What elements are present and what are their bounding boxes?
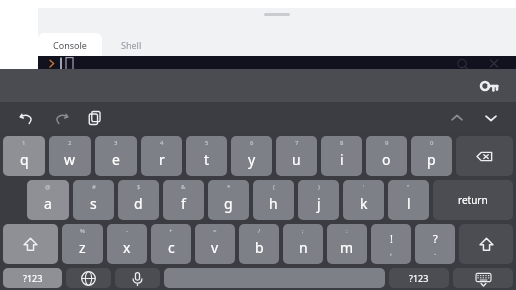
staticText: y — [248, 150, 256, 169]
button[interactable]: : — [327, 224, 367, 264]
button[interactable]: # — [73, 180, 114, 220]
staticText: ?123 — [409, 272, 429, 284]
button[interactable]: * — [208, 180, 249, 220]
button[interactable]: 4 — [141, 136, 182, 176]
button[interactable]: Backspace — [456, 136, 513, 176]
staticText: c — [168, 238, 175, 257]
staticText: x — [123, 238, 131, 257]
button[interactable]: Console — [38, 33, 102, 56]
button[interactable]: 2 — [49, 136, 91, 176]
staticText: v — [211, 238, 219, 257]
staticText: z — [79, 238, 86, 257]
staticText: 8 — [340, 139, 344, 147]
button[interactable]: Next — [474, 102, 508, 134]
staticText: m — [340, 238, 354, 257]
staticText: 0 — [430, 139, 434, 147]
button[interactable]: 6 — [231, 136, 272, 176]
staticText: + — [169, 227, 173, 235]
staticText: . — [434, 246, 437, 257]
staticText: return — [458, 193, 488, 207]
staticText: ) — [318, 183, 320, 191]
button[interactable]: - — [107, 224, 147, 264]
button[interactable]: ( — [253, 180, 294, 220]
staticText: , — [390, 246, 393, 257]
button[interactable]: 0 — [411, 136, 452, 176]
staticText: a — [44, 194, 52, 213]
staticText: p — [427, 150, 436, 169]
staticText: @ — [45, 183, 51, 191]
button[interactable]: 5 — [186, 136, 227, 176]
button[interactable]: ) — [298, 180, 339, 220]
button[interactable]: ' — [343, 180, 384, 220]
staticText: ; — [302, 227, 304, 235]
staticText: 3 — [114, 139, 118, 147]
button[interactable]: Voice input — [115, 268, 160, 288]
button[interactable]: + — [151, 224, 191, 264]
button[interactable]: Language — [66, 268, 111, 288]
staticText: h — [269, 194, 278, 213]
button[interactable] — [164, 268, 385, 288]
button[interactable]: " — [388, 180, 429, 220]
staticText: o — [382, 150, 391, 169]
staticText: j — [317, 194, 321, 213]
button[interactable]: Copy — [78, 102, 112, 134]
staticText: & — [181, 183, 186, 191]
staticText: b — [255, 238, 264, 257]
staticText: ' — [363, 183, 365, 191]
button[interactable]: return — [433, 180, 513, 220]
button[interactable]: ! — [371, 224, 411, 264]
button[interactable]: 9 — [366, 136, 407, 176]
staticText: " — [407, 183, 410, 191]
button[interactable]: Shell — [102, 33, 160, 56]
staticText: ? — [433, 231, 438, 246]
staticText: - — [126, 227, 128, 235]
staticText: = — [213, 227, 217, 235]
staticText: f — [181, 194, 186, 213]
staticText: k — [360, 194, 368, 213]
button[interactable]: Shift — [3, 224, 58, 264]
button[interactable]: Redo — [44, 102, 78, 134]
staticText: 2 — [68, 139, 72, 147]
staticText: $ — [137, 183, 141, 191]
button[interactable]: % — [62, 224, 103, 264]
button[interactable]: 1 — [3, 136, 45, 176]
staticText: s — [90, 194, 97, 213]
button[interactable]: Passwords — [474, 71, 504, 101]
button[interactable]: ?123 — [3, 268, 62, 288]
staticText: 9 — [385, 139, 389, 147]
button[interactable]: Undo — [10, 102, 44, 134]
staticText: # — [92, 183, 96, 191]
staticText: g — [224, 194, 233, 213]
staticText: t — [204, 150, 210, 169]
staticText: r — [159, 150, 165, 169]
staticText: Shell — [121, 39, 142, 51]
button[interactable]: Hide keyboard — [453, 268, 513, 288]
button[interactable]: ?123 — [389, 268, 449, 288]
staticText: 6 — [250, 139, 254, 147]
staticText: n — [299, 238, 308, 257]
staticText: q — [20, 150, 29, 169]
button[interactable]: Shift — [459, 224, 513, 264]
staticText: d — [134, 194, 143, 213]
staticText: : — [346, 227, 348, 235]
staticText: 5 — [205, 139, 209, 147]
button[interactable]: 7 — [276, 136, 317, 176]
staticText: * — [227, 183, 231, 191]
button[interactable]: ; — [283, 224, 323, 264]
staticText: / — [258, 227, 261, 235]
staticText: e — [112, 150, 120, 169]
staticText: % — [80, 227, 85, 235]
button[interactable]: 3 — [95, 136, 137, 176]
button[interactable]: $ — [118, 180, 159, 220]
staticText: w — [64, 150, 76, 169]
button[interactable]: / — [239, 224, 279, 264]
button[interactable]: & — [163, 180, 204, 220]
button[interactable]: = — [195, 224, 235, 264]
button[interactable]: @ — [27, 180, 69, 220]
button[interactable]: 8 — [321, 136, 362, 176]
button[interactable]: Previous — [440, 102, 474, 134]
staticText: ?123 — [23, 272, 43, 284]
staticText: i — [340, 150, 344, 169]
staticText: ( — [273, 183, 275, 191]
button[interactable]: ? — [415, 224, 455, 264]
